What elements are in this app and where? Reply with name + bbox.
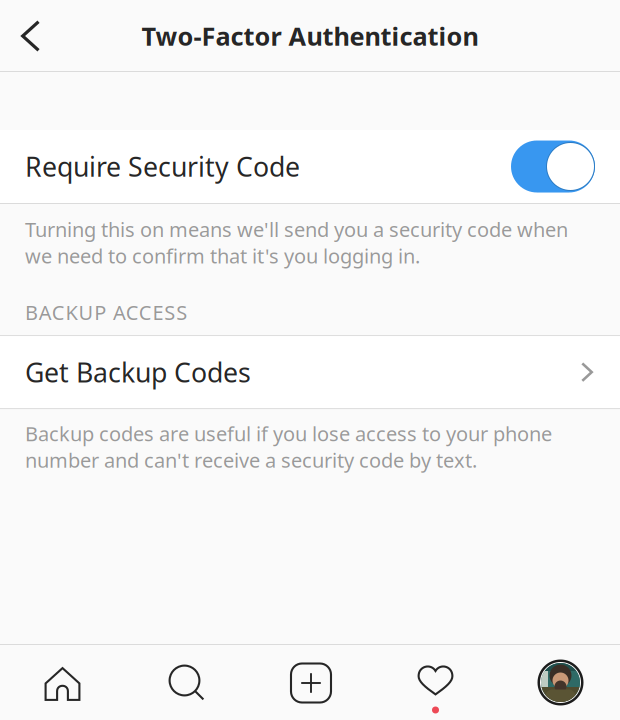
button[interactable]: Activity [372, 644, 496, 720]
button[interactable]: Home [0, 644, 124, 720]
staticText: Turning this on means we'll send you a s… [25, 216, 568, 269]
button[interactable]: Require Security Code [0, 130, 620, 203]
button[interactable]: Back [0, 5, 58, 67]
button[interactable]: New Post [248, 644, 372, 720]
button[interactable]: Search [124, 644, 248, 720]
staticText: Get Backup Codes [25, 354, 251, 390]
button[interactable]: Profile [496, 644, 620, 720]
button[interactable]: Get Backup Codes [0, 336, 620, 408]
staticText: Backup codes are useful if you lose acce… [25, 420, 552, 473]
staticText: Require Security Code [25, 149, 300, 184]
staticText: Two-Factor Authentication [141, 19, 478, 53]
staticText: BACKUP ACCESS [25, 299, 187, 325]
